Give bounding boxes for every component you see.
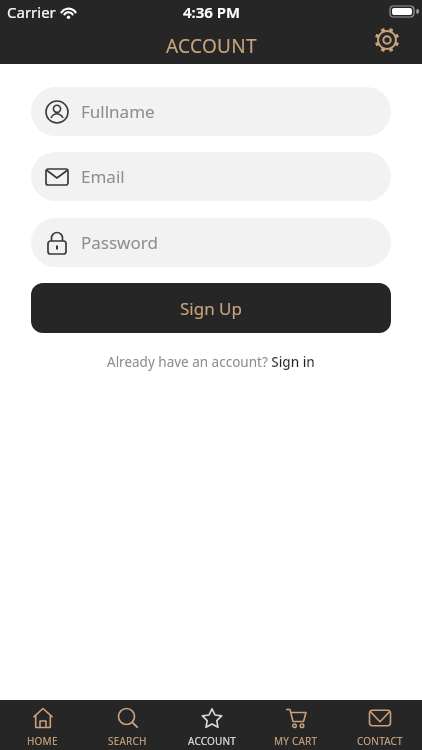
button[interactable]: CONTACT: [338, 700, 422, 750]
staticText: CONTACT: [357, 734, 403, 748]
button[interactable]: Already have an account? Sign in: [0, 353, 422, 371]
staticText: ACCOUNT: [166, 33, 257, 59]
button[interactable]: Sign Up: [31, 283, 391, 333]
button[interactable]: HOME: [0, 700, 85, 750]
staticText: Already have an account? Sign in: [107, 353, 315, 371]
button[interactable]: SEARCH: [85, 700, 170, 750]
button[interactable]: Email: [31, 152, 391, 201]
staticText: HOME: [27, 734, 58, 748]
staticText: Sign Up: [180, 297, 242, 320]
button[interactable]: [373, 26, 401, 54]
button[interactable]: Fullname: [31, 87, 391, 136]
staticText: Password: [81, 231, 158, 254]
button[interactable]: Password: [31, 218, 391, 267]
staticText: ACCOUNT: [188, 734, 237, 748]
staticText: SEARCH: [108, 734, 147, 748]
staticText: Email: [81, 165, 125, 188]
button[interactable]: ACCOUNT: [170, 700, 254, 750]
staticText: 4:36 PM: [183, 2, 240, 22]
button[interactable]: MY CART: [254, 700, 338, 750]
staticText: Carrier: [7, 2, 56, 22]
staticText: MY CART: [274, 734, 318, 748]
staticText: Fullname: [81, 100, 155, 123]
